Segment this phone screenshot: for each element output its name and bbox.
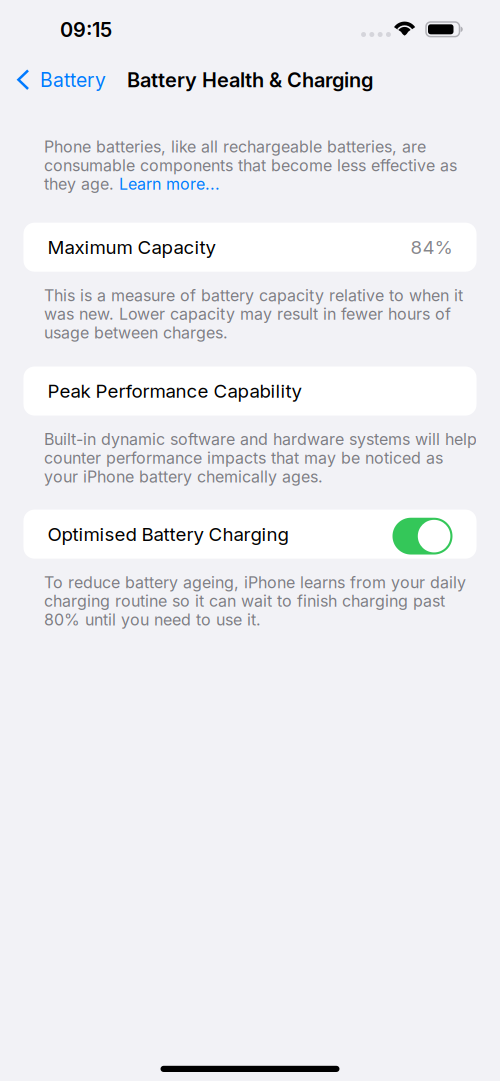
staticText: Maximum Capacity: [47, 236, 215, 258]
staticText: Peak Performance Capability: [47, 380, 301, 402]
button[interactable]: Battery: [0, 61, 118, 99]
staticText: Battery: [40, 68, 106, 92]
staticText: 80% until you need to use it.: [44, 610, 261, 629]
staticText: Learn more...: [119, 174, 220, 194]
staticText: Phone batteries, like all rechargeable b…: [44, 137, 426, 156]
staticText: This is a measure of battery capacity re…: [44, 286, 463, 305]
staticText: Battery Health & Charging: [127, 68, 373, 92]
staticText: charging routine so it can wait to finis…: [44, 591, 445, 611]
staticText: 84%: [410, 236, 452, 258]
staticText: To reduce battery ageing, iPhone learns …: [44, 573, 466, 592]
staticText: was new. Lower capacity may result in fe…: [44, 304, 451, 324]
staticText: 09:15: [60, 17, 112, 42]
staticText: Optimised Battery Charging: [47, 523, 288, 545]
staticText: consumable components that become less e…: [44, 156, 457, 175]
button[interactable]: Learn more...: [119, 174, 220, 194]
button[interactable]: Peak Performance Capability: [0, 367, 500, 416]
staticText: your iPhone battery chemically ages.: [44, 467, 323, 486]
button[interactable]: Optimised Battery Charging: [0, 510, 500, 559]
staticText: usage between charges.: [44, 323, 228, 342]
button[interactable]: Maximum Capacity: [0, 223, 500, 272]
staticText: they age.: [44, 174, 119, 194]
staticText: Built-in dynamic software and hardware s…: [44, 430, 477, 449]
staticText: counter performance impacts that may be …: [44, 448, 443, 468]
